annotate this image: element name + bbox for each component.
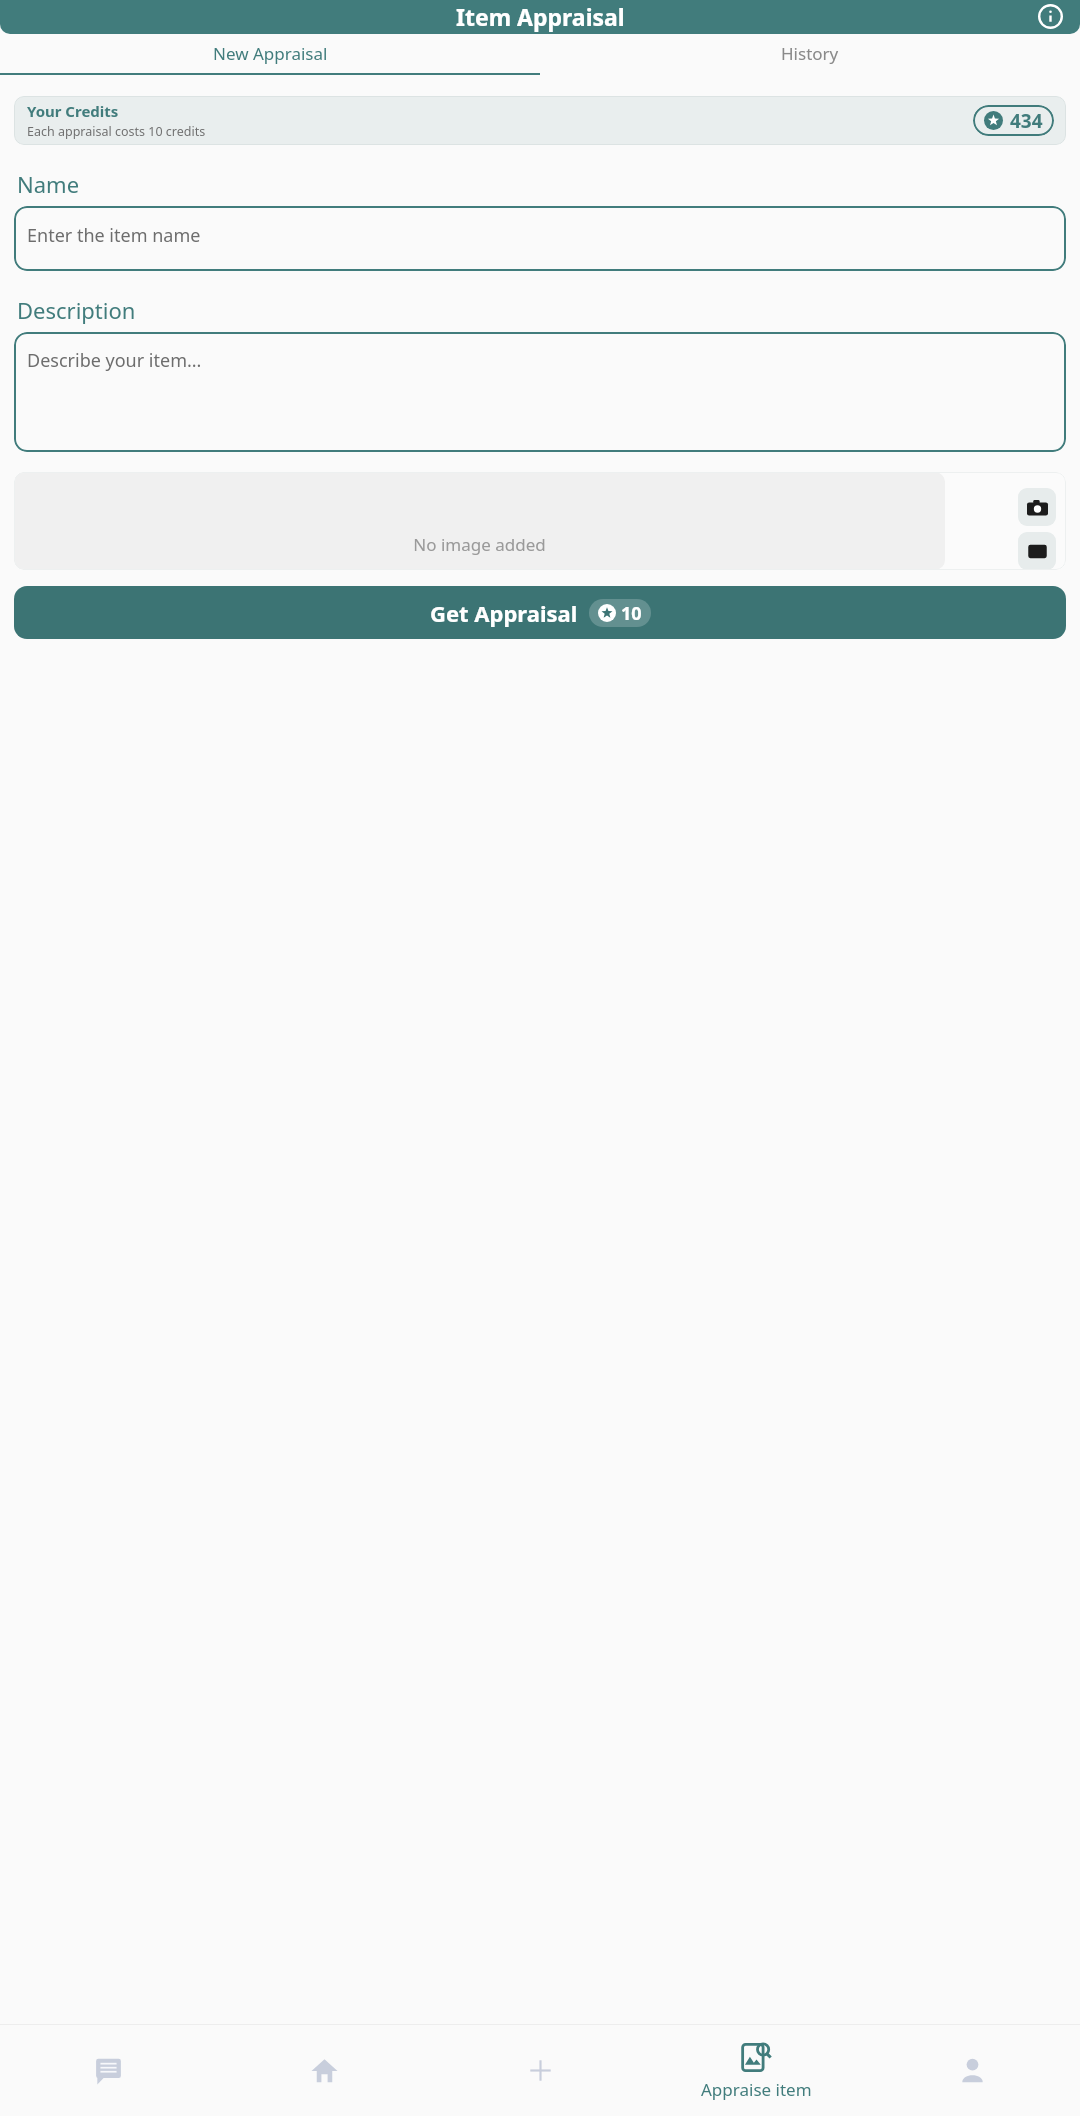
staticText: Description [17, 295, 136, 325]
staticText: Describe your item... [27, 348, 202, 373]
staticText: Get Appraisal [430, 598, 578, 628]
button[interactable]: History [540, 34, 1080, 73]
staticText: Enter the item name [27, 223, 201, 248]
staticText: History [781, 42, 839, 65]
button[interactable]: Appraise item [648, 2025, 864, 2116]
button[interactable]: Take photo [1018, 488, 1056, 526]
staticText: Each appraisal costs 10 credits [27, 123, 206, 140]
staticText: Item Appraisal [456, 1, 625, 32]
button[interactable]: Choose from gallery [1018, 532, 1056, 570]
staticText: 434 [1010, 108, 1043, 134]
button[interactable]: No image added [14, 472, 945, 570]
staticText: Appraise item [701, 2078, 812, 2101]
button[interactable]: 434 [973, 105, 1054, 136]
staticText: Name [17, 169, 80, 199]
button[interactable]: Profile [864, 2025, 1080, 2116]
button[interactable]: Messages [0, 2025, 216, 2116]
staticText: 10 [621, 601, 642, 626]
button[interactable]: Home [216, 2025, 432, 2116]
button[interactable]: New Appraisal [0, 34, 540, 73]
staticText: No image added [413, 533, 546, 556]
button[interactable]: Info [1035, 1, 1065, 31]
staticText: New Appraisal [213, 42, 328, 65]
button[interactable]: Your Credits [14, 96, 1066, 145]
button[interactable]: Enter the item name [14, 206, 1066, 271]
button[interactable]: Describe your item... [14, 332, 1066, 452]
button[interactable]: Get Appraisal [14, 586, 1066, 639]
staticText: Your Credits [27, 101, 119, 121]
